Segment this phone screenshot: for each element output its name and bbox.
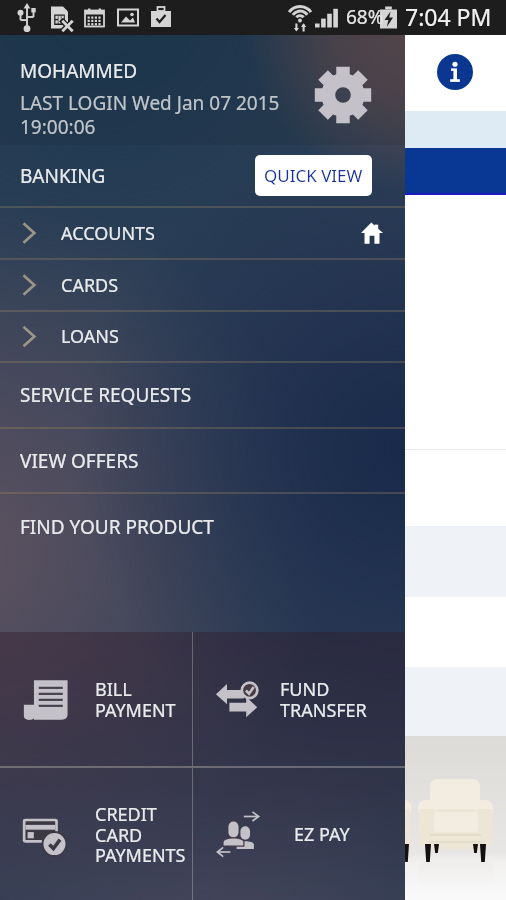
- button[interactable]: LOANS: [0, 312, 405, 361]
- staticText: ACCOUNTS: [61, 221, 155, 246]
- button[interactable]: CARDS: [0, 260, 405, 310]
- staticText: LOANS: [61, 324, 119, 349]
- staticText: VIEW OFFERS: [20, 448, 139, 474]
- staticText: 7:04 PM: [405, 1, 492, 32]
- staticText: CARDS: [61, 273, 119, 298]
- button[interactable]: SERVICE REQUESTS: [0, 363, 405, 427]
- button[interactable]: Info: [437, 54, 473, 90]
- button[interactable]: ACCOUNTS: [0, 208, 405, 258]
- staticText: CREDIT CARD PAYMENTS: [95, 802, 186, 867]
- button[interactable]: Settings: [314, 66, 372, 124]
- button[interactable]: CREDIT CARD PAYMENTS: [0, 768, 192, 900]
- staticText: LAST LOGIN Wed Jan 07 2015 19:00:06: [20, 90, 292, 139]
- staticText: BANKING: [20, 163, 106, 189]
- button[interactable]: EZ PAY: [193, 768, 405, 900]
- button[interactable]: FUND TRANSFER: [193, 632, 405, 766]
- staticText: 68%: [346, 4, 384, 30]
- button[interactable]: BILL PAYMENT: [0, 632, 192, 766]
- staticText: FUND TRANSFER: [280, 677, 367, 722]
- button[interactable]: VIEW OFFERS: [0, 429, 405, 492]
- staticText: FIND YOUR PRODUCT: [20, 514, 214, 540]
- staticText: MOHAMMED: [20, 58, 138, 84]
- staticText: EZ PAY: [294, 822, 350, 847]
- staticText: QUICK VIEW: [264, 164, 363, 187]
- button[interactable]: FIND YOUR PRODUCT: [0, 494, 405, 559]
- button[interactable]: QUICK VIEW: [255, 155, 372, 196]
- staticText: BILL PAYMENT: [95, 677, 176, 722]
- staticText: SERVICE REQUESTS: [20, 382, 192, 408]
